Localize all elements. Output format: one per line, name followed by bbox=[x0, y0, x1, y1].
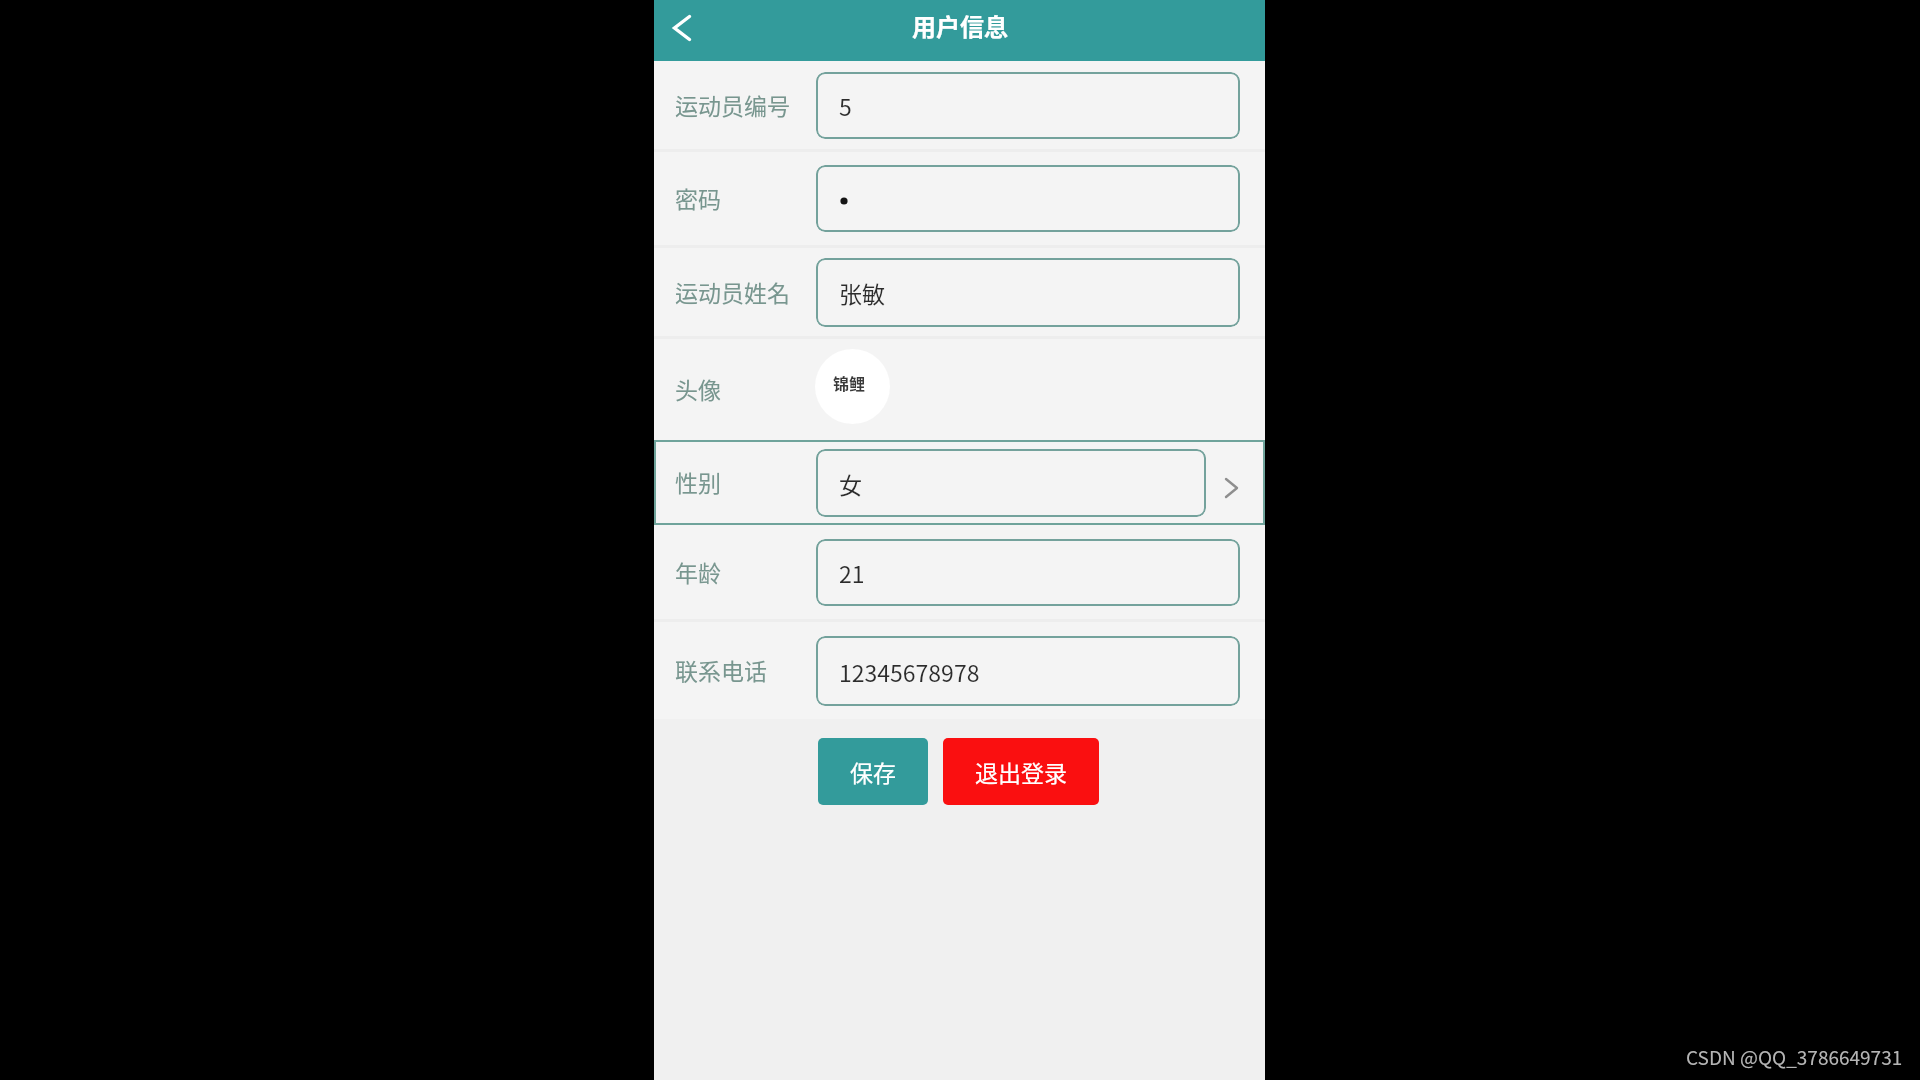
staticText: 女 bbox=[839, 467, 862, 500]
button[interactable]: 年龄 bbox=[654, 525, 1265, 619]
button[interactable]: Back bbox=[659, 5, 705, 51]
button[interactable]: 退出登录 bbox=[943, 738, 1099, 805]
button[interactable]: 密码 bbox=[654, 152, 1265, 245]
staticText: 锦鲤 bbox=[833, 371, 866, 394]
staticText: 退出登录 bbox=[975, 755, 1067, 788]
button[interactable]: 性别 bbox=[654, 440, 1265, 525]
staticText: CSDN @QQ_3786649731 bbox=[1686, 1043, 1903, 1071]
staticText: 张敏 bbox=[839, 276, 885, 309]
staticText: 保存 bbox=[850, 755, 896, 788]
staticText: 头像 bbox=[675, 372, 721, 405]
staticText: 12345678978 bbox=[839, 655, 980, 688]
button[interactable]: 运动员编号 bbox=[654, 61, 1265, 149]
staticText: 年龄 bbox=[675, 555, 721, 588]
staticText: 5 bbox=[839, 89, 852, 122]
button[interactable]: Change avatar bbox=[815, 349, 890, 424]
button[interactable]: 联系电话 bbox=[654, 622, 1265, 719]
staticText: 21 bbox=[839, 556, 865, 589]
staticText: 用户信息 bbox=[912, 8, 1008, 43]
staticText: 运动员编号 bbox=[675, 88, 790, 121]
staticText: 性别 bbox=[675, 465, 721, 498]
button[interactable]: 运动员姓名 bbox=[654, 248, 1265, 336]
button[interactable]: 头像 bbox=[654, 339, 1265, 440]
staticText: 联系电话 bbox=[675, 653, 767, 686]
button[interactable]: 保存 bbox=[818, 738, 928, 805]
staticText: 密码 bbox=[675, 181, 721, 214]
staticText: 运动员姓名 bbox=[675, 275, 790, 308]
